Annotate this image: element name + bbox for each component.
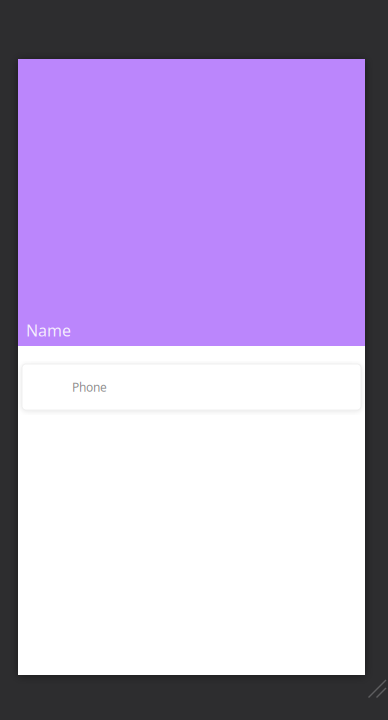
button[interactable]: Phone (22, 364, 361, 410)
staticText: Phone (72, 379, 107, 395)
button[interactable]: Resize window (364, 677, 388, 701)
staticText: Name (26, 320, 71, 341)
